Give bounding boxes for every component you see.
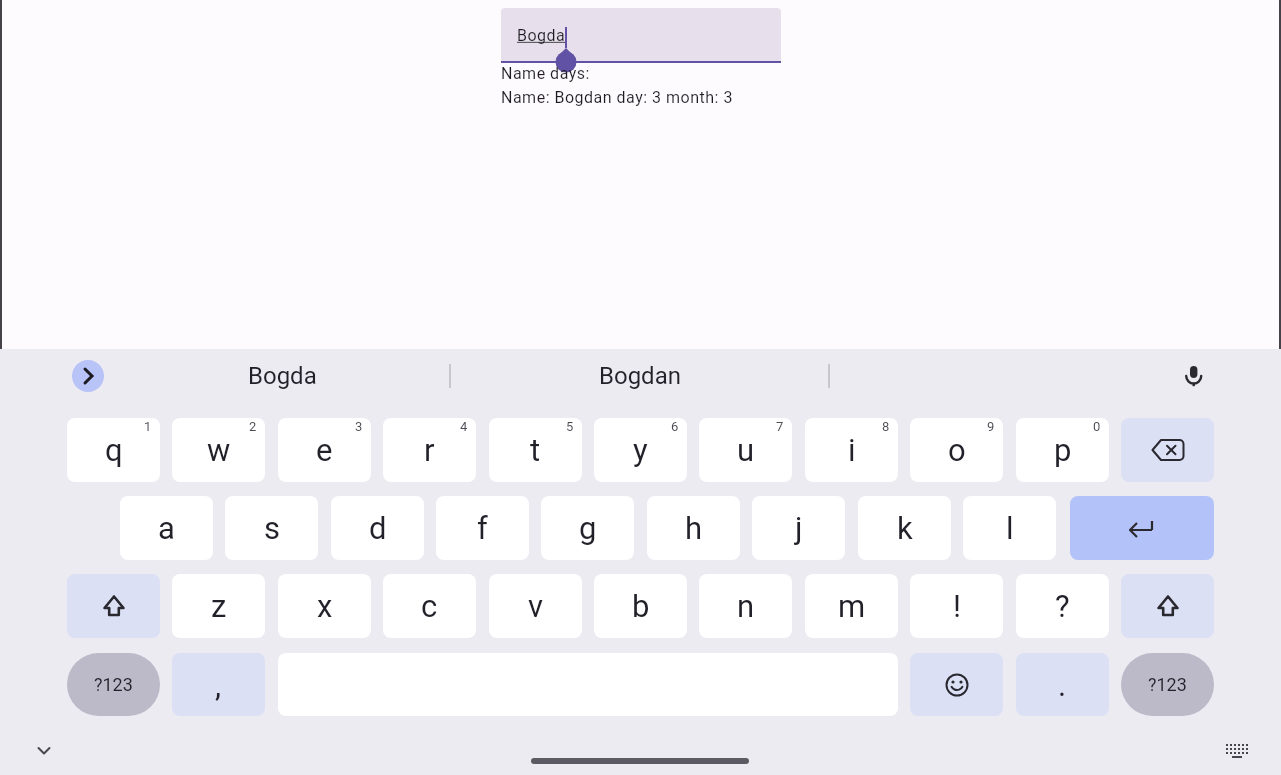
button[interactable]: k	[858, 496, 951, 560]
button[interactable]: b	[594, 574, 687, 638]
staticText: x	[317, 588, 333, 624]
staticText: w	[207, 432, 231, 468]
button[interactable]: r	[383, 418, 476, 482]
button[interactable]: .	[1016, 653, 1109, 716]
staticText: z	[211, 588, 227, 624]
staticText: .	[1058, 667, 1067, 703]
staticText: 5	[566, 419, 574, 434]
button[interactable]: Bogda	[501, 8, 781, 63]
staticText: Name: Bogdan day: 3 month: 3	[501, 88, 733, 107]
button[interactable]	[1121, 418, 1214, 482]
button[interactable]: q	[67, 418, 160, 482]
staticText: 3	[355, 419, 363, 434]
button[interactable]: z	[172, 574, 265, 638]
staticText: ?123	[1148, 674, 1187, 695]
button[interactable]: h	[647, 496, 740, 560]
staticText: Name days:	[501, 64, 590, 83]
button[interactable]: n	[699, 574, 792, 638]
button[interactable]	[910, 653, 1003, 716]
staticText: ,	[215, 667, 222, 703]
staticText: c	[421, 588, 438, 624]
staticText: n	[737, 588, 755, 624]
staticText: ?	[1055, 588, 1070, 624]
button[interactable]	[1121, 574, 1214, 638]
staticText: b	[632, 588, 650, 624]
button[interactable]: c	[383, 574, 476, 638]
staticText: i	[848, 432, 856, 468]
staticText: 4	[460, 419, 468, 434]
button[interactable]: p	[1016, 418, 1109, 482]
button[interactable]: Bogdan	[560, 357, 720, 395]
button[interactable]: l	[963, 496, 1056, 560]
staticText: 6	[671, 419, 679, 434]
staticText: m	[838, 588, 866, 624]
button[interactable]: v	[489, 574, 582, 638]
button[interactable]: !	[910, 574, 1003, 638]
button[interactable]: m	[805, 574, 898, 638]
button[interactable]: e	[278, 418, 371, 482]
staticText: j	[795, 510, 803, 546]
staticText: 9	[987, 419, 995, 434]
staticText: e	[316, 432, 333, 468]
staticText: l	[1006, 510, 1014, 546]
staticText: 2	[249, 419, 257, 434]
button[interactable]: o	[910, 418, 1003, 482]
button[interactable]: x	[278, 574, 371, 638]
button[interactable]: a	[120, 496, 213, 560]
staticText: !	[953, 588, 961, 624]
staticText: v	[528, 588, 544, 624]
button[interactable]: s	[225, 496, 318, 560]
button[interactable]: w	[172, 418, 265, 482]
button[interactable]: j	[752, 496, 845, 560]
button[interactable]: g	[541, 496, 634, 560]
staticText: Bogda	[517, 26, 566, 45]
button[interactable]: u	[699, 418, 792, 482]
button[interactable]: ,	[172, 653, 265, 716]
staticText: 0	[1093, 419, 1101, 434]
button[interactable]: y	[594, 418, 687, 482]
button[interactable]: ?123	[67, 653, 160, 716]
button[interactable]: Bogda	[202, 357, 362, 395]
staticText: 8	[882, 419, 890, 434]
staticText: k	[897, 510, 913, 546]
button[interactable]	[1182, 364, 1206, 388]
button[interactable]: i	[805, 418, 898, 482]
staticText: h	[685, 510, 703, 546]
staticText: u	[737, 432, 755, 468]
staticText: a	[158, 510, 175, 546]
staticText: o	[948, 432, 966, 468]
button[interactable]: ?	[1016, 574, 1109, 638]
button[interactable]	[72, 360, 104, 392]
staticText: y	[633, 432, 648, 468]
button[interactable]: t	[489, 418, 582, 482]
button[interactable]: d	[331, 496, 424, 560]
staticText: ?123	[94, 674, 133, 695]
staticText: t	[530, 432, 541, 468]
staticText: f	[477, 510, 488, 546]
staticText: d	[369, 510, 387, 546]
button[interactable]	[67, 574, 160, 638]
staticText: g	[579, 510, 597, 546]
staticText: Bogda	[248, 362, 317, 390]
staticText: s	[264, 510, 280, 546]
staticText: 7	[776, 419, 784, 434]
staticText: r	[424, 432, 435, 468]
staticText: 1	[144, 419, 152, 434]
button[interactable]	[30, 738, 58, 764]
button[interactable]: ?123	[1121, 653, 1214, 716]
staticText: q	[105, 432, 123, 468]
button[interactable]: f	[436, 496, 529, 560]
staticText: Bogdan	[599, 362, 681, 390]
button[interactable]	[531, 758, 749, 764]
button[interactable]	[1070, 496, 1214, 560]
staticText: p	[1054, 432, 1072, 468]
